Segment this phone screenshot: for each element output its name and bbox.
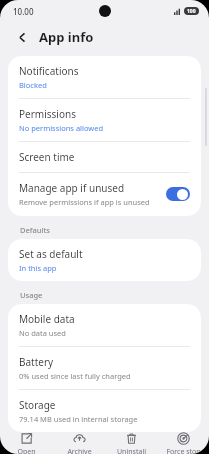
- button[interactable]: Force stop: [157, 432, 209, 454]
- button[interactable]: Storage: [8, 390, 201, 432]
- button[interactable]: Screen time: [8, 142, 201, 172]
- staticText: Open: [17, 447, 36, 454]
- staticText: Storage: [19, 398, 56, 412]
- staticText: 10.00: [13, 6, 34, 17]
- staticText: Manage app if unused: [19, 181, 125, 195]
- staticText: Remove permissions if app is unused: [19, 197, 150, 207]
- staticText: In this app: [19, 263, 57, 273]
- button[interactable]: Manage app if unused toggle: [166, 187, 190, 201]
- staticText: Set as default: [19, 247, 83, 261]
- button[interactable]: Archive: [53, 432, 105, 454]
- staticText: Permissions: [19, 107, 76, 121]
- staticText: Mobile data: [19, 312, 75, 326]
- button[interactable]: Set as default: [8, 239, 201, 281]
- staticText: Battery: [19, 355, 54, 369]
- button[interactable]: Notifications: [8, 56, 201, 98]
- staticText: Uninstall: [117, 447, 146, 454]
- staticText: App info: [39, 28, 94, 46]
- staticText: 0% used since last fully charged: [19, 371, 131, 381]
- staticText: 79.14 MB used in internal storage: [19, 414, 138, 424]
- staticText: Notifications: [19, 64, 79, 78]
- staticText: Defaults: [20, 225, 50, 235]
- button[interactable]: Manage app if unused: [8, 173, 201, 216]
- button[interactable]: Back: [12, 27, 32, 47]
- staticText: Blocked: [19, 80, 47, 90]
- button[interactable]: Uninstall: [105, 432, 157, 454]
- staticText: Force stop: [166, 447, 201, 454]
- button[interactable]: Mobile data: [8, 304, 201, 346]
- staticText: 100: [187, 8, 196, 15]
- staticText: Archive: [67, 447, 92, 454]
- button[interactable]: Permissions: [8, 99, 201, 141]
- button[interactable]: Open: [0, 432, 53, 454]
- staticText: Screen time: [19, 150, 75, 164]
- staticText: Usage: [20, 290, 43, 300]
- staticText: No permissions allowed: [19, 123, 104, 133]
- button[interactable]: Battery: [8, 347, 201, 389]
- staticText: No data used: [19, 328, 66, 338]
